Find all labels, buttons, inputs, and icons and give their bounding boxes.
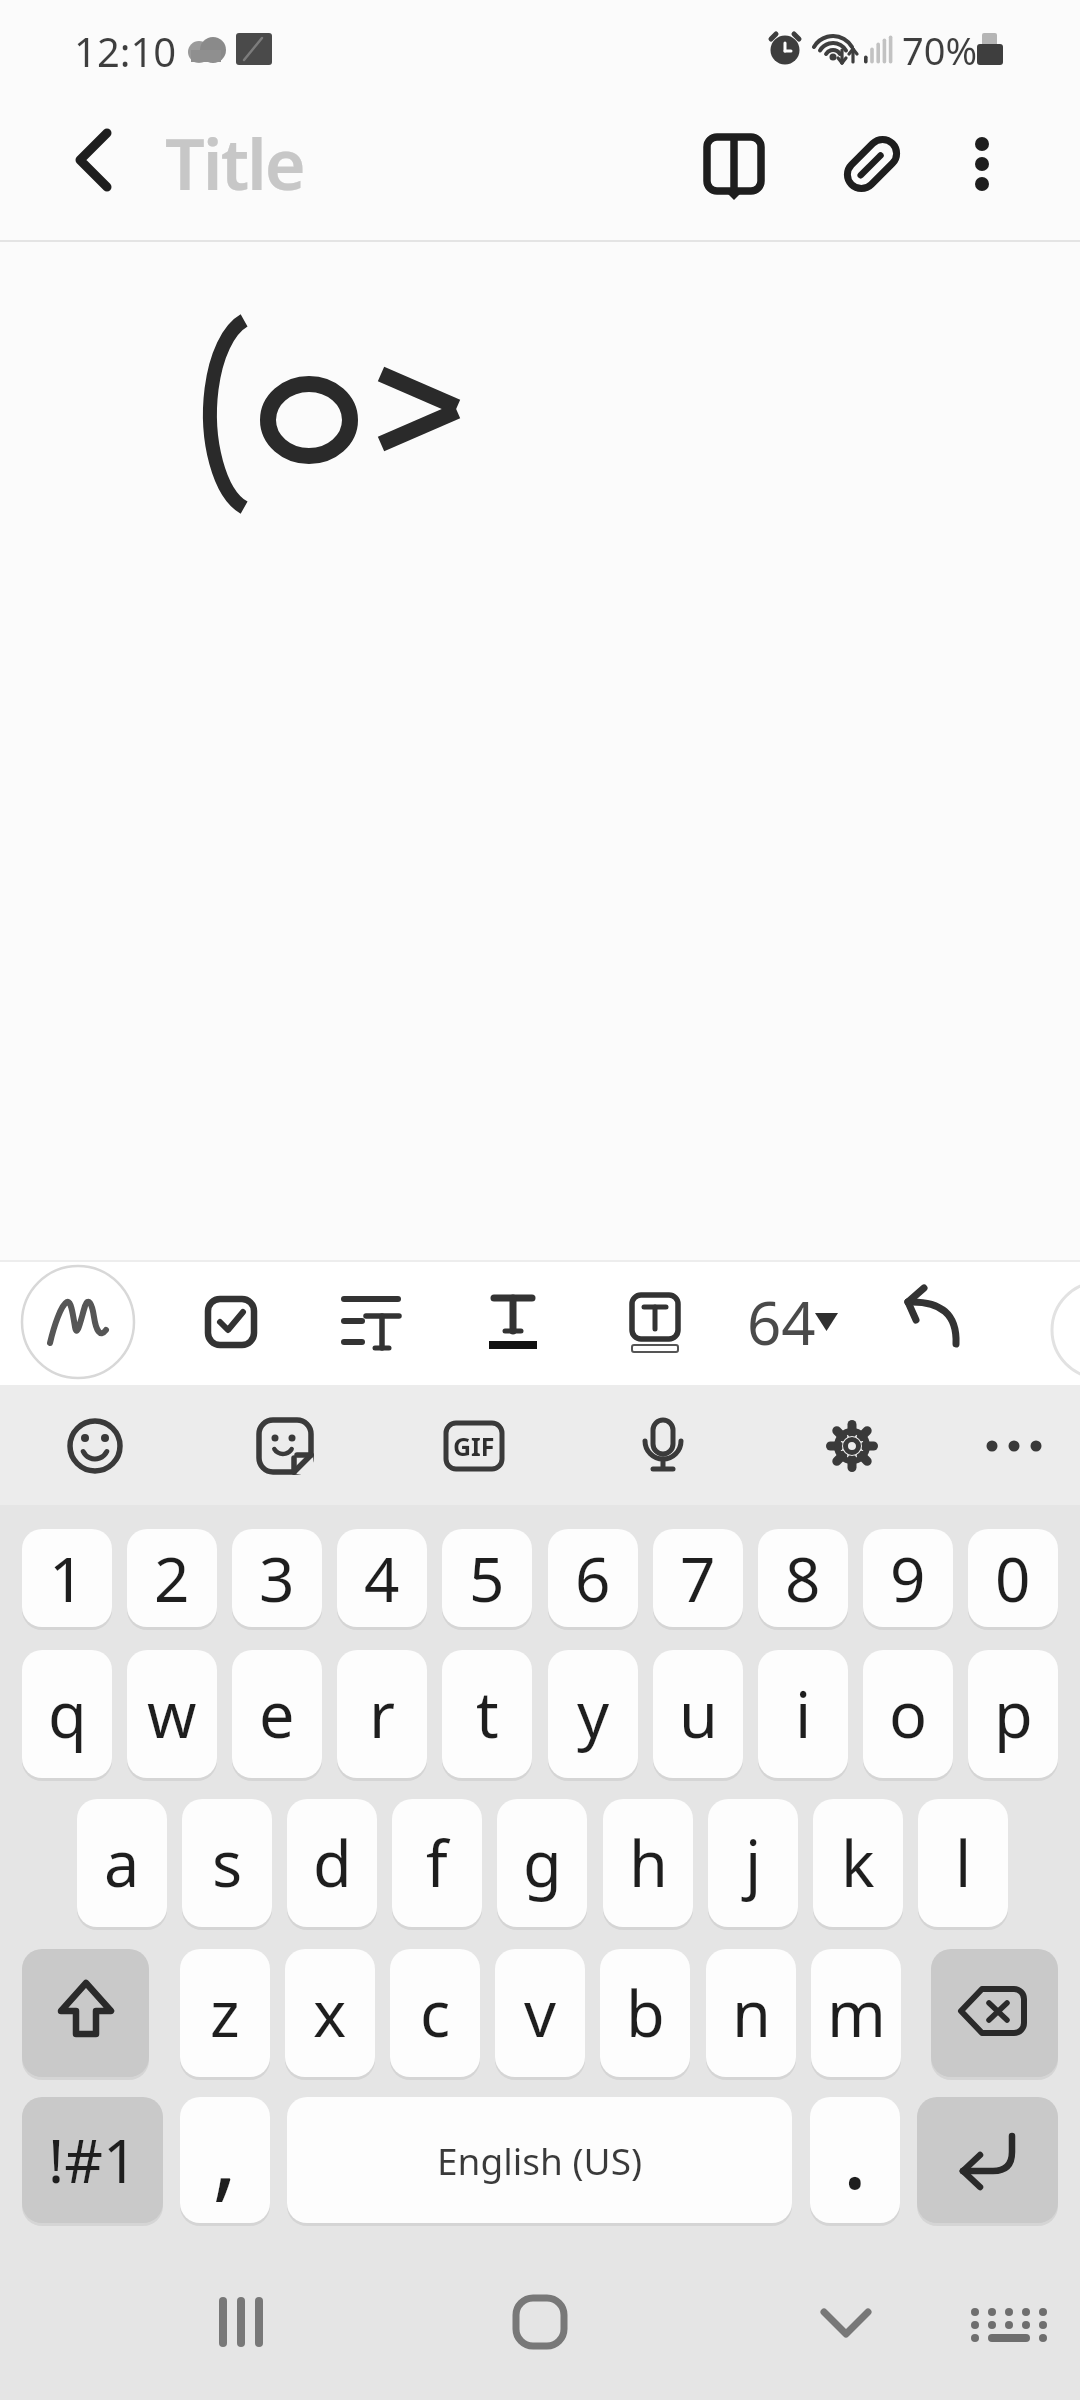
staticText: 4 [364,1536,400,1620]
staticText: English (US) [437,2135,643,2185]
staticText: 0 [995,1536,1031,1620]
staticText: GIF [453,1429,495,1463]
button[interactable] [979,1411,1049,1481]
button[interactable]: , [180,2097,270,2223]
staticText: 8 [785,1536,821,1620]
staticText: !#1 [48,2119,138,2201]
button[interactable] [22,1266,134,1378]
button[interactable]: b [600,1949,690,2077]
staticText: x [313,1970,347,2056]
button[interactable]: z [180,1949,270,2077]
button[interactable] [917,2097,1058,2223]
button[interactable] [50,130,120,200]
button[interactable]: a [77,1799,167,1927]
staticText: o [889,1671,928,1757]
button[interactable]: g [497,1799,587,1927]
staticText: 3 [259,1536,295,1620]
button[interactable] [697,127,771,201]
staticText: z [210,1970,240,2056]
button[interactable] [287,2097,792,2223]
button[interactable]: i [758,1650,848,1778]
button[interactable]: k [813,1799,903,1927]
button[interactable]: t [442,1650,532,1778]
button[interactable]: h [603,1799,693,1927]
button[interactable] [196,1287,266,1357]
staticText: p [994,1671,1033,1757]
button[interactable] [22,1949,149,2077]
button[interactable]: v [495,1949,585,2077]
staticText: 1 [49,1536,85,1620]
staticText: , [212,2086,238,2212]
button[interactable]: . [810,2097,900,2223]
staticText: e [259,1671,295,1757]
staticText: 12:10 [74,24,177,78]
button[interactable]: l [918,1799,1008,1927]
button[interactable] [900,1285,972,1357]
staticText: r [369,1671,396,1757]
button[interactable] [250,1411,320,1481]
staticText: l [955,1820,972,1906]
button[interactable] [490,2290,590,2360]
button[interactable]: 4 [337,1529,427,1627]
staticText: 2 [154,1536,190,1620]
staticText: . [842,2086,868,2212]
button[interactable]: 6 [548,1529,638,1627]
button[interactable]: r [337,1650,427,1778]
staticText: 70% [902,24,978,76]
button[interactable] [817,1411,887,1481]
button[interactable] [190,2290,290,2360]
button[interactable] [835,127,909,201]
button[interactable] [479,1287,549,1357]
button[interactable]: 2 [127,1529,217,1627]
button[interactable]: p [968,1650,1058,1778]
button[interactable]: 7 [653,1529,743,1627]
staticText: m [827,1970,886,2056]
button[interactable]: m [811,1949,901,2077]
button[interactable]: 8 [758,1529,848,1627]
button[interactable] [628,1411,698,1481]
staticText: b [626,1970,665,2056]
button[interactable]: 9 [863,1529,953,1627]
staticText: j [745,1820,762,1906]
button[interactable] [958,2290,1058,2360]
button[interactable]: s [182,1799,272,1927]
staticText: y [577,1671,610,1757]
staticText: n [732,1970,771,2056]
staticText: c [420,1970,451,2056]
button[interactable]: q [22,1650,112,1778]
staticText: w [147,1671,197,1757]
button[interactable]: 5 [442,1529,532,1627]
button[interactable]: 3 [232,1529,322,1627]
button[interactable] [335,1287,407,1357]
button[interactable]: d [287,1799,377,1927]
button[interactable]: o [863,1650,953,1778]
staticText: k [841,1820,875,1906]
staticText: t [476,1671,499,1757]
staticText: 64 [747,1281,816,1363]
button[interactable]: n [706,1949,796,2077]
staticText: Title [165,115,304,210]
button[interactable]: y [548,1650,638,1778]
staticText: h [629,1820,668,1906]
button[interactable]: e [232,1650,322,1778]
staticText: u [679,1671,718,1757]
button[interactable]: !#1 [22,2097,163,2223]
button[interactable]: j [708,1799,798,1927]
button[interactable]: 0 [968,1529,1058,1627]
button[interactable]: x [285,1949,375,2077]
button[interactable] [740,1287,848,1357]
staticText: 5 [469,1536,505,1620]
button[interactable] [947,127,1017,201]
button[interactable] [60,1411,130,1481]
button[interactable]: u [653,1650,743,1778]
staticText: 9 [890,1536,926,1620]
button[interactable]: c [390,1949,480,2077]
button[interactable] [796,2290,896,2360]
button[interactable]: w [127,1650,217,1778]
button[interactable] [439,1411,509,1481]
button[interactable]: f [392,1799,482,1927]
button[interactable]: 1 [22,1529,112,1627]
button[interactable] [620,1287,690,1359]
staticText: a [104,1820,140,1906]
button[interactable] [931,1949,1058,2077]
